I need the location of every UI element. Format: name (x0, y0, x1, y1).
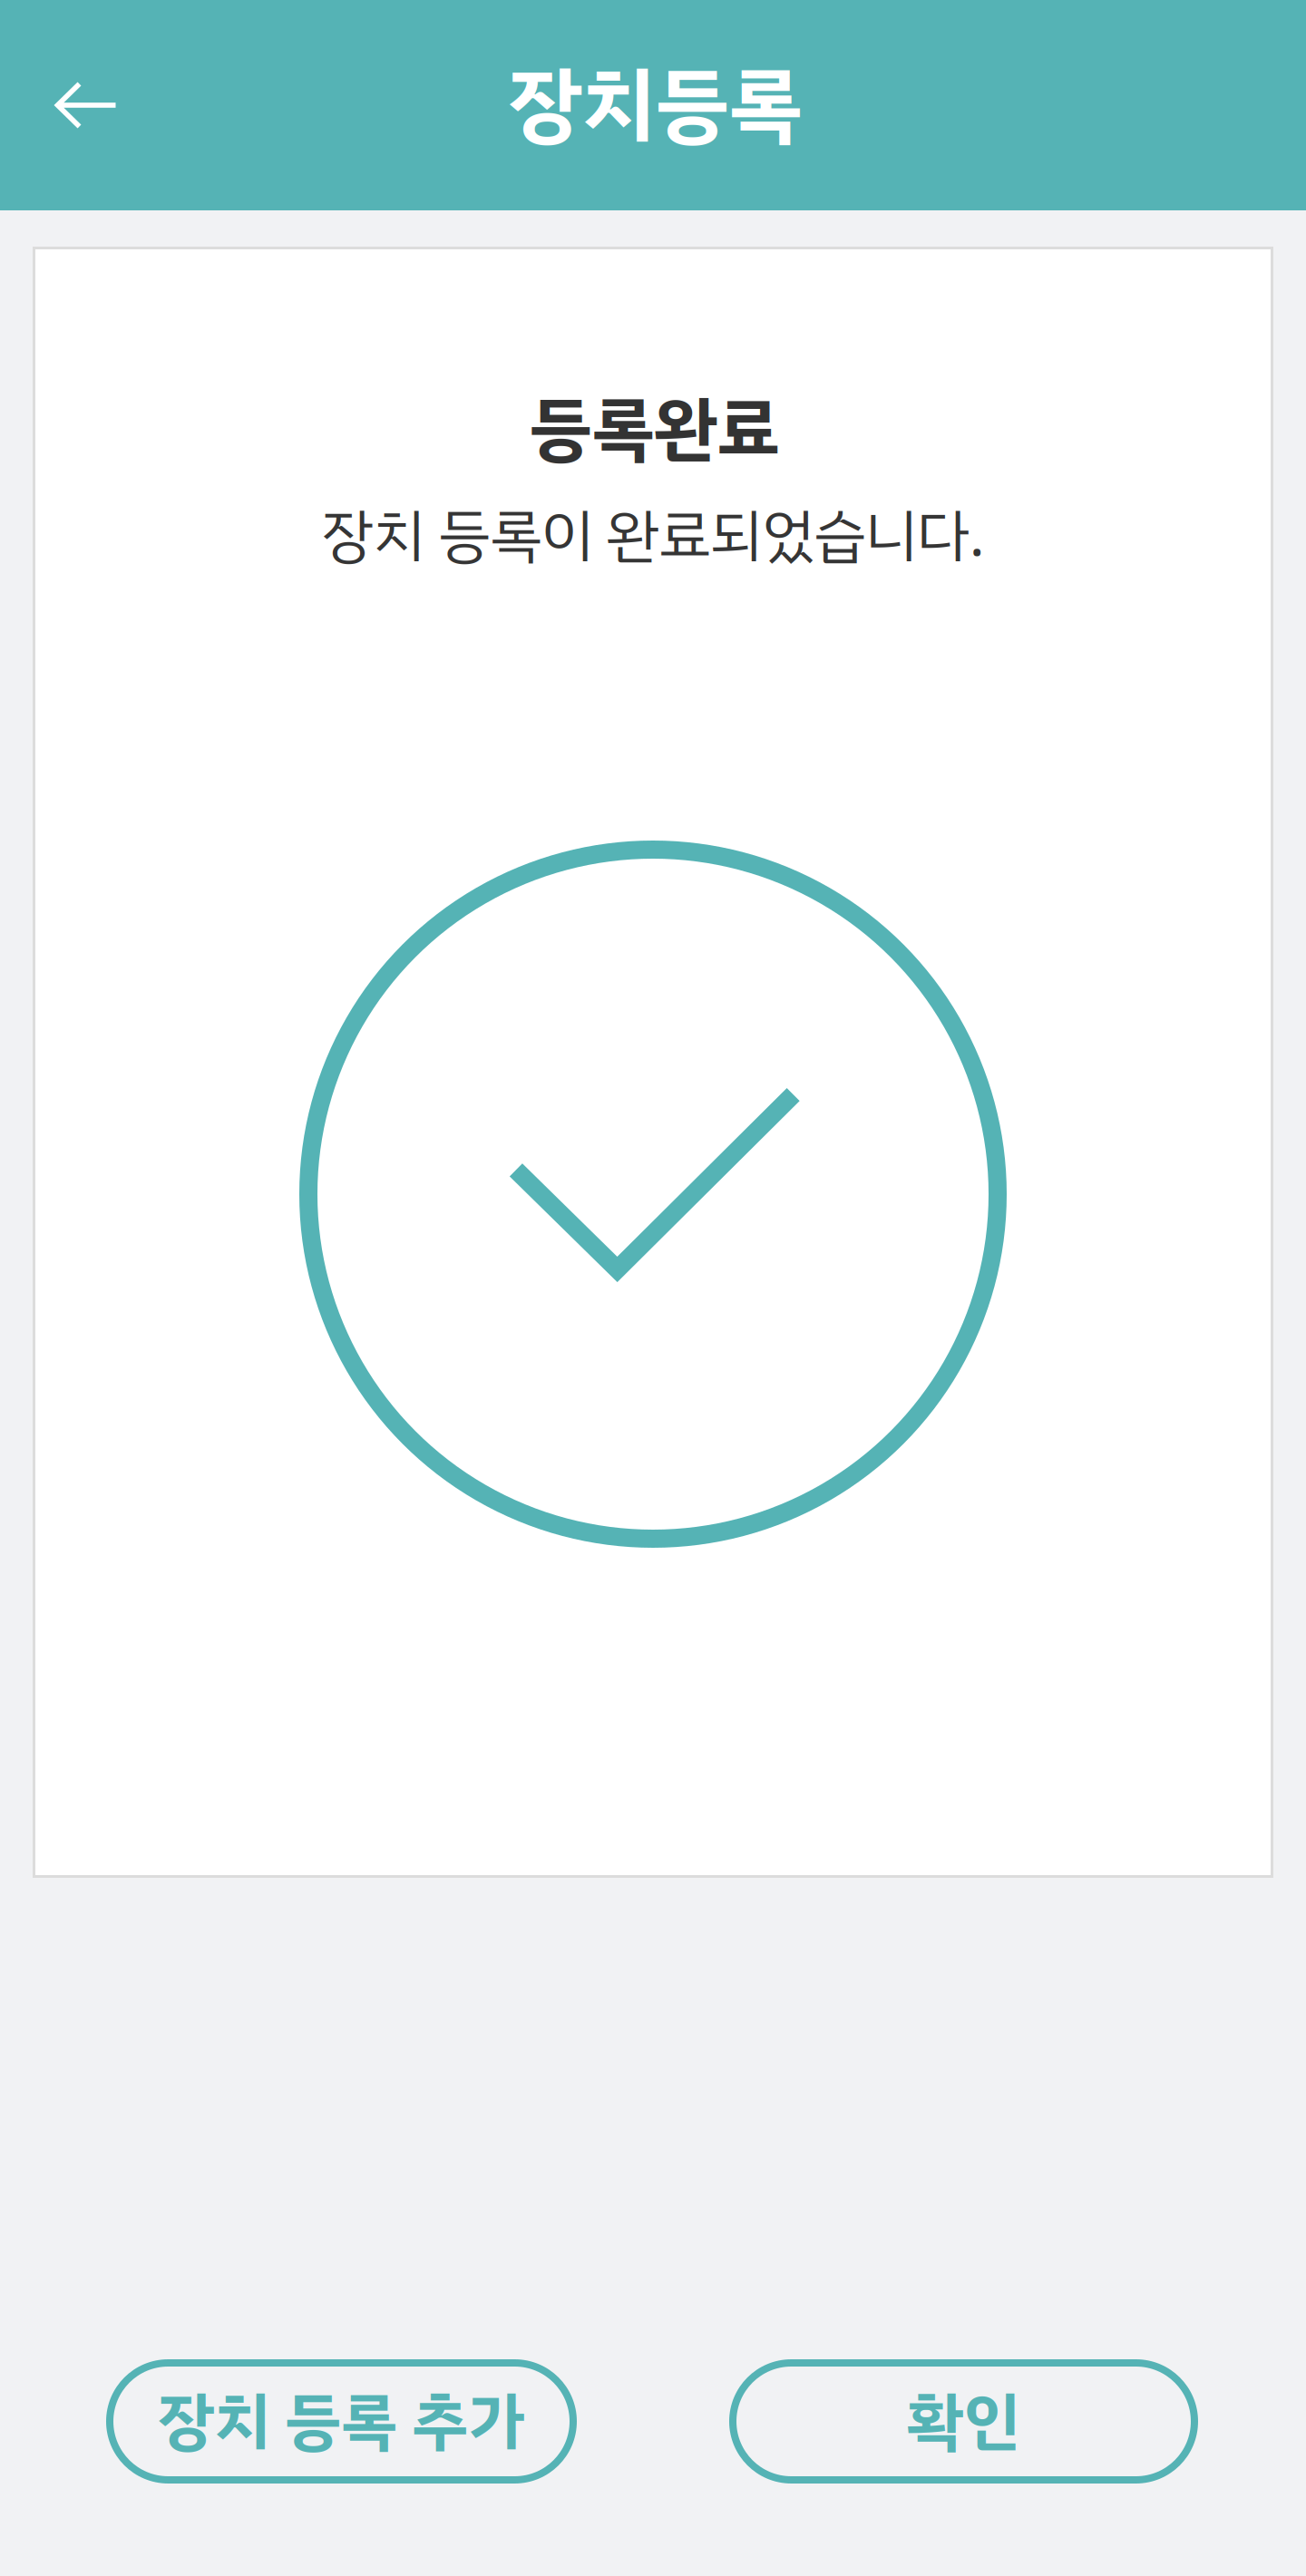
staticText: 장치 등록이 완료되었습니다. (322, 492, 984, 579)
staticText: 등록완료 (530, 376, 780, 481)
button[interactable]: 확인 (729, 2359, 1198, 2484)
button[interactable]: Back (27, 53, 143, 158)
staticText: 장치등록 (509, 44, 803, 167)
button[interactable]: 장치 등록 추가 (106, 2359, 577, 2484)
staticText: 장치 등록 추가 (158, 2374, 525, 2469)
staticText: 확인 (907, 2374, 1020, 2469)
